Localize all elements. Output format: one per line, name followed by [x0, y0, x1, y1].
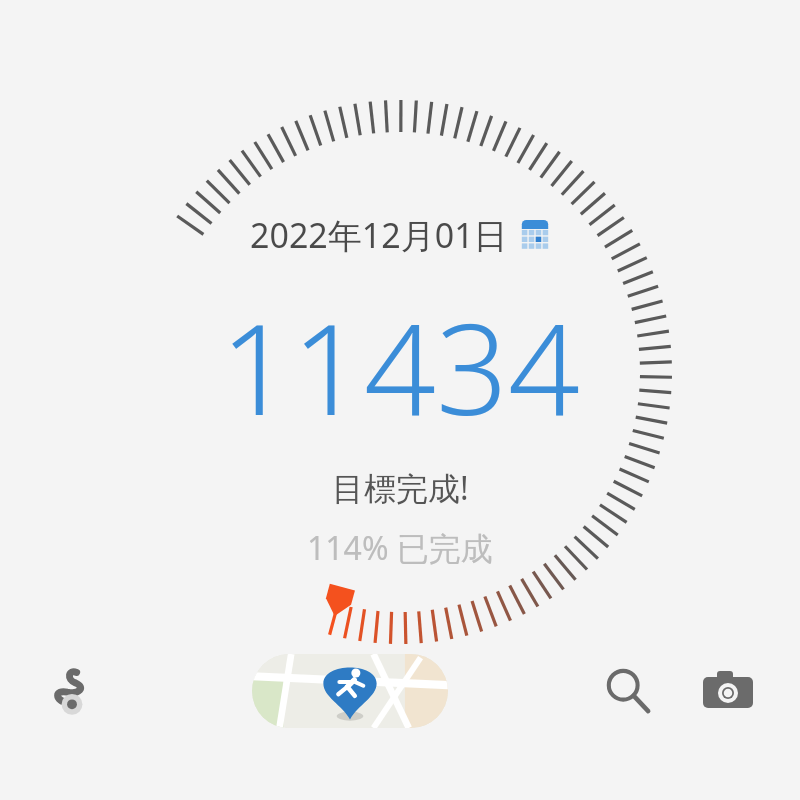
button[interactable]: Search [592, 655, 664, 727]
staticText: 2022年12月01日 [250, 212, 508, 258]
staticText: 114% 已完成 [307, 526, 493, 570]
button[interactable]: 2022年12月01日 [250, 212, 550, 258]
staticText: 目標完成! [332, 466, 469, 510]
button[interactable]: Camera [692, 655, 764, 727]
staticText: 11434 [220, 280, 580, 452]
button[interactable]: Map [252, 654, 448, 728]
other: Calendar [520, 220, 550, 250]
button[interactable]: Route [36, 655, 108, 727]
